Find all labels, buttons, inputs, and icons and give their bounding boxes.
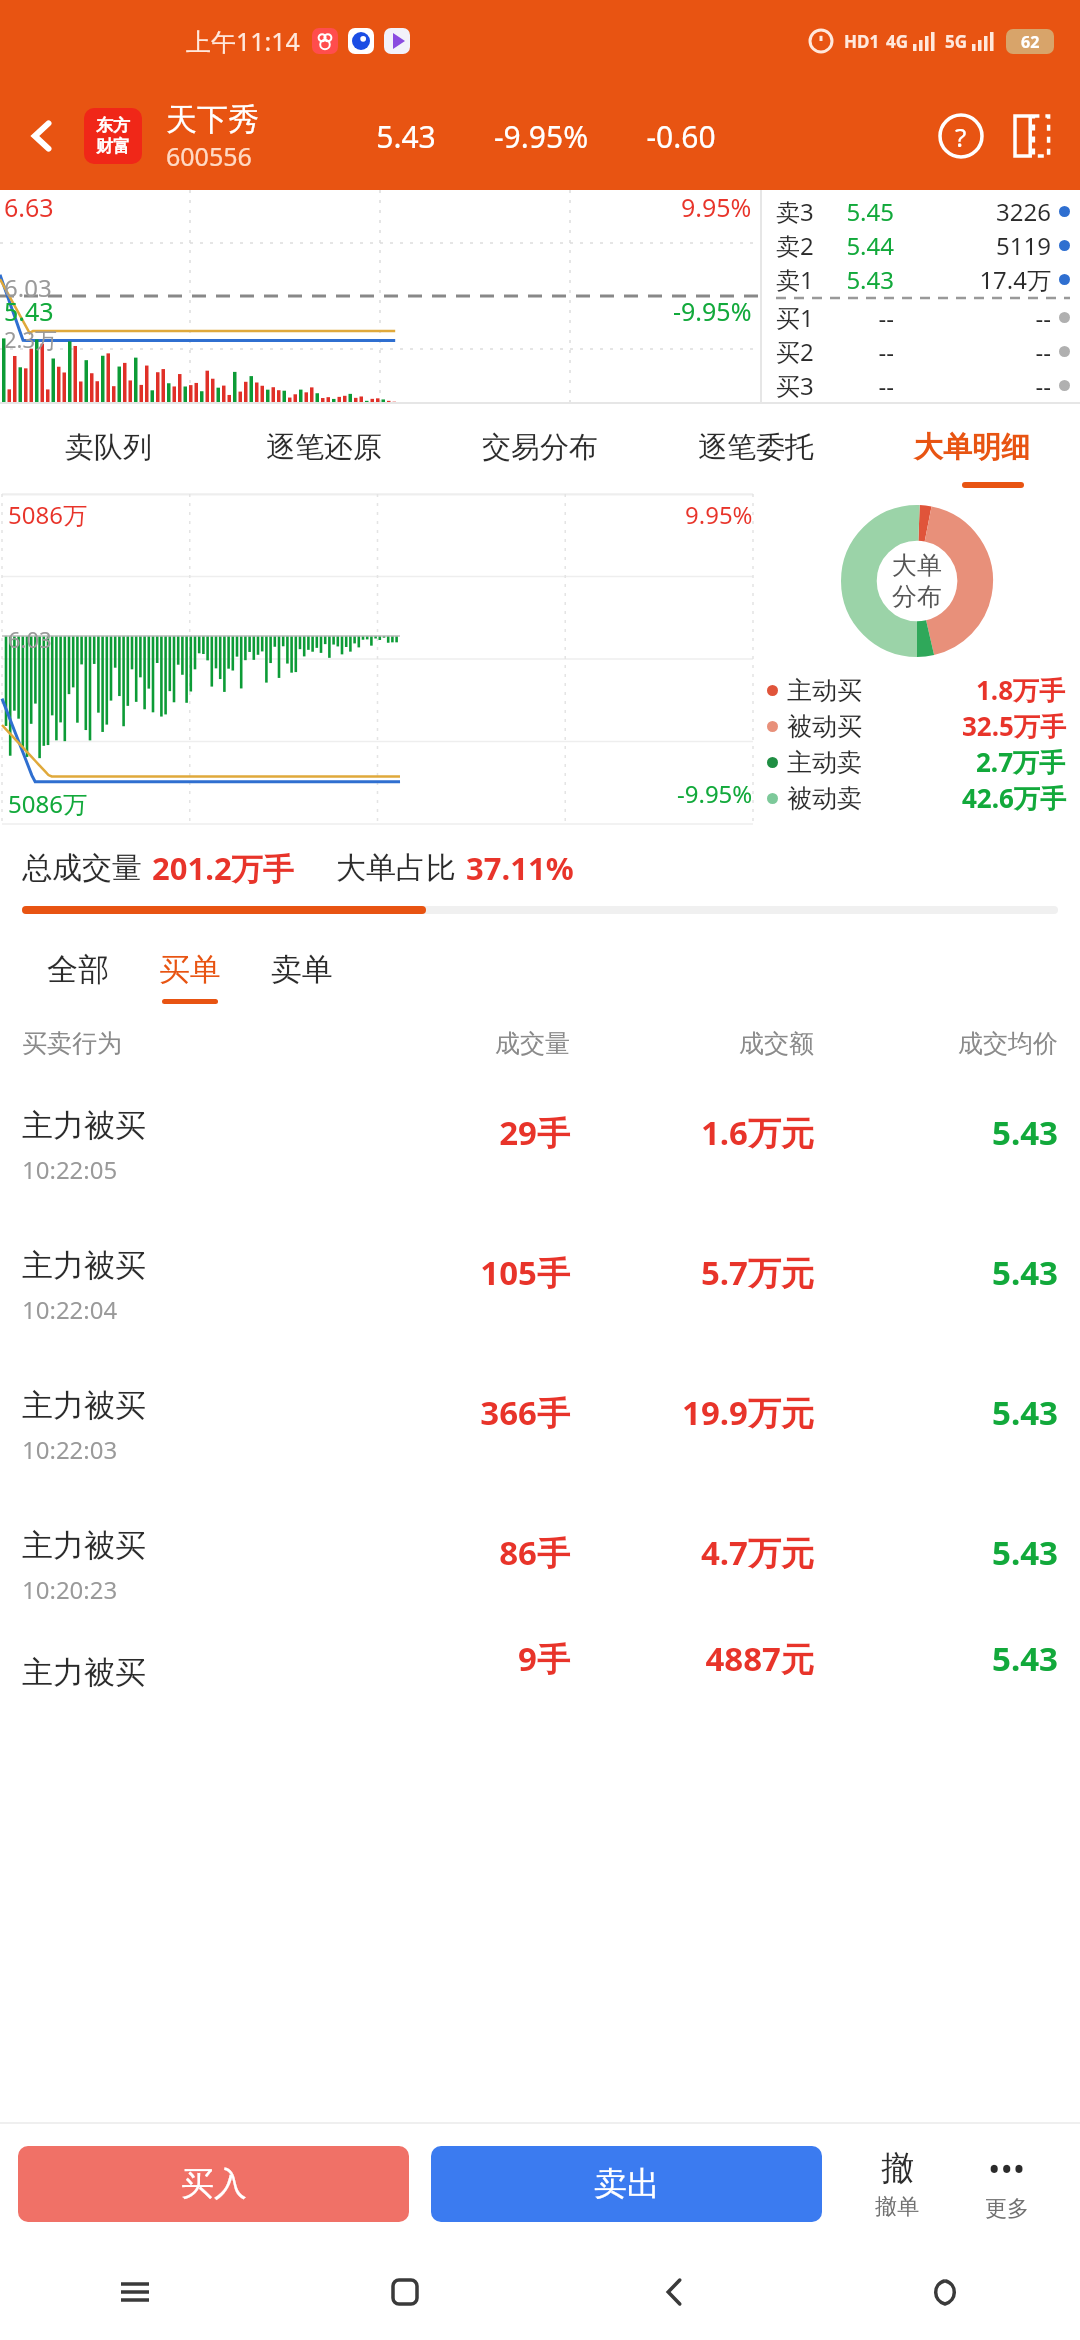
staticText: 4G bbox=[886, 30, 909, 53]
staticText: 201.2万手 bbox=[152, 847, 294, 889]
staticText: ••• bbox=[988, 2146, 1026, 2191]
staticText: 撤 bbox=[881, 2147, 914, 2189]
staticText: 17.4万 bbox=[894, 263, 1051, 296]
staticText: -- bbox=[828, 335, 894, 368]
staticText: 2.7万手 bbox=[976, 744, 1066, 780]
staticText: 5.43 bbox=[992, 1250, 1058, 1295]
staticText: 卖2 bbox=[776, 229, 828, 262]
staticText: 5.43 bbox=[992, 1636, 1058, 1681]
staticText: 5G bbox=[945, 30, 968, 53]
staticText: 逐笔委托 bbox=[698, 429, 814, 466]
staticText: -- bbox=[828, 369, 894, 402]
staticText: 主力被买 bbox=[22, 1106, 146, 1145]
staticText: 6.63 bbox=[4, 190, 54, 224]
staticText: 东方 bbox=[96, 115, 130, 136]
staticText: 逐笔还原 bbox=[266, 429, 382, 466]
button[interactable]: menu bbox=[0, 2244, 270, 2340]
button[interactable]: 东方 bbox=[84, 108, 142, 164]
staticText: -- bbox=[828, 301, 894, 334]
button[interactable]: 主力被买 bbox=[22, 1496, 1058, 1636]
button[interactable]: 撤 bbox=[842, 2124, 952, 2244]
staticText: 被动卖 bbox=[787, 783, 862, 814]
staticText: 成交均价 bbox=[814, 1028, 1058, 1059]
staticText: -9.95% bbox=[466, 116, 616, 157]
button[interactable]: 买入 bbox=[18, 2146, 409, 2222]
staticText: HD1 bbox=[844, 30, 880, 53]
button[interactable]: 卖出 bbox=[431, 2146, 822, 2222]
staticText: 105手 bbox=[480, 1250, 570, 1295]
staticText: 62 bbox=[1021, 31, 1040, 53]
button[interactable]: 逐笔委托 bbox=[648, 404, 864, 490]
staticText: -- bbox=[894, 369, 1051, 402]
staticText: 9.95% bbox=[681, 190, 752, 224]
staticText: 4887元 bbox=[705, 1636, 814, 1681]
staticText: -- bbox=[894, 335, 1051, 368]
staticText: 上午11:14 bbox=[186, 24, 300, 58]
button[interactable]: 主力被买 bbox=[22, 1636, 1058, 1708]
staticText: 主力被买 bbox=[22, 1653, 146, 1692]
staticText: 买入 bbox=[181, 2163, 247, 2205]
staticText: 32.5万手 bbox=[962, 708, 1066, 744]
button[interactable]: ••• bbox=[952, 2124, 1062, 2244]
staticText: 卖3 bbox=[776, 195, 828, 228]
staticText: 财富 bbox=[96, 136, 130, 157]
staticText: 交易分布 bbox=[482, 429, 598, 466]
staticText: ? bbox=[955, 119, 967, 154]
staticText: 大单 bbox=[892, 550, 942, 581]
staticText: 5.7万元 bbox=[700, 1250, 814, 1295]
button[interactable]: 返回 bbox=[0, 82, 84, 190]
staticText: 成交量 bbox=[326, 1028, 570, 1059]
staticText: 9.95% bbox=[685, 498, 753, 531]
staticText: 5.44 bbox=[828, 229, 894, 262]
staticText: 总成交量 bbox=[22, 849, 142, 887]
staticText: 5.43 bbox=[992, 1390, 1058, 1435]
staticText: 主力被买 bbox=[22, 1246, 146, 1285]
button[interactable]: 主力被买 bbox=[22, 1076, 1058, 1216]
staticText: 19.9万元 bbox=[682, 1390, 814, 1435]
staticText: 600556 bbox=[166, 139, 252, 173]
button[interactable]: assist bbox=[810, 2244, 1080, 2340]
staticText: 6.03 bbox=[4, 271, 52, 304]
button[interactable]: 主力被买 bbox=[22, 1356, 1058, 1496]
staticText: 买2 bbox=[776, 335, 828, 368]
staticText: 买单 bbox=[159, 950, 221, 989]
staticText: 366手 bbox=[480, 1390, 570, 1435]
staticText: 42.6万手 bbox=[962, 780, 1066, 816]
staticText: 5.45 bbox=[828, 195, 894, 228]
staticText: 5.43 bbox=[346, 116, 466, 157]
button[interactable]: 交易分布 bbox=[432, 404, 648, 490]
staticText: 被动买 bbox=[787, 711, 862, 742]
staticText: 主力被买 bbox=[22, 1386, 146, 1425]
button[interactable]: 更多 bbox=[996, 101, 1066, 171]
button[interactable]: 全部 bbox=[22, 928, 134, 1010]
staticText: 3226 bbox=[894, 195, 1051, 228]
staticText: 大单明细 bbox=[914, 429, 1030, 466]
button[interactable]: 帮助 bbox=[926, 101, 996, 171]
staticText: 4.7万元 bbox=[700, 1530, 814, 1575]
staticText: 5.43 bbox=[4, 294, 54, 328]
staticText: 大单占比 bbox=[336, 849, 456, 887]
staticText: 更多 bbox=[985, 2195, 1029, 2223]
staticText: 6.03 bbox=[8, 624, 52, 654]
staticText: 1.8万手 bbox=[976, 672, 1066, 708]
button[interactable]: 主力被买 bbox=[22, 1216, 1058, 1356]
staticText: 10:22:04 bbox=[22, 1293, 118, 1326]
staticText: 撤单 bbox=[875, 2193, 919, 2221]
button[interactable]: back bbox=[540, 2244, 810, 2340]
staticText: 卖队列 bbox=[65, 429, 152, 466]
staticText: 5119 bbox=[894, 229, 1051, 262]
staticText: 5.43 bbox=[992, 1110, 1058, 1155]
button[interactable]: 卖队列 bbox=[0, 404, 216, 490]
button[interactable]: 逐笔还原 bbox=[216, 404, 432, 490]
staticText: -9.95% bbox=[673, 294, 752, 328]
button[interactable]: 大单明细 bbox=[864, 404, 1080, 490]
button[interactable]: home bbox=[270, 2244, 540, 2340]
staticText: 10:22:03 bbox=[22, 1433, 118, 1466]
staticText: 2.3万 bbox=[4, 324, 58, 354]
button[interactable]: 卖单 bbox=[246, 928, 358, 1010]
button[interactable]: 买单 bbox=[134, 928, 246, 1010]
staticText: 5.43 bbox=[992, 1530, 1058, 1575]
staticText: 卖出 bbox=[594, 2163, 660, 2205]
staticText: 卖1 bbox=[776, 263, 828, 296]
staticText: 10:20:23 bbox=[22, 1573, 118, 1606]
